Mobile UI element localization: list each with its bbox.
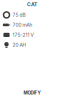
staticText: 700 mAh [12,22,32,28]
staticText: MODIFY [23,90,40,95]
staticText: 20 AH [12,42,26,48]
staticText: 75 dB [12,12,25,18]
staticText: 175-211 V [12,32,33,38]
staticText: CAT [27,1,37,7]
